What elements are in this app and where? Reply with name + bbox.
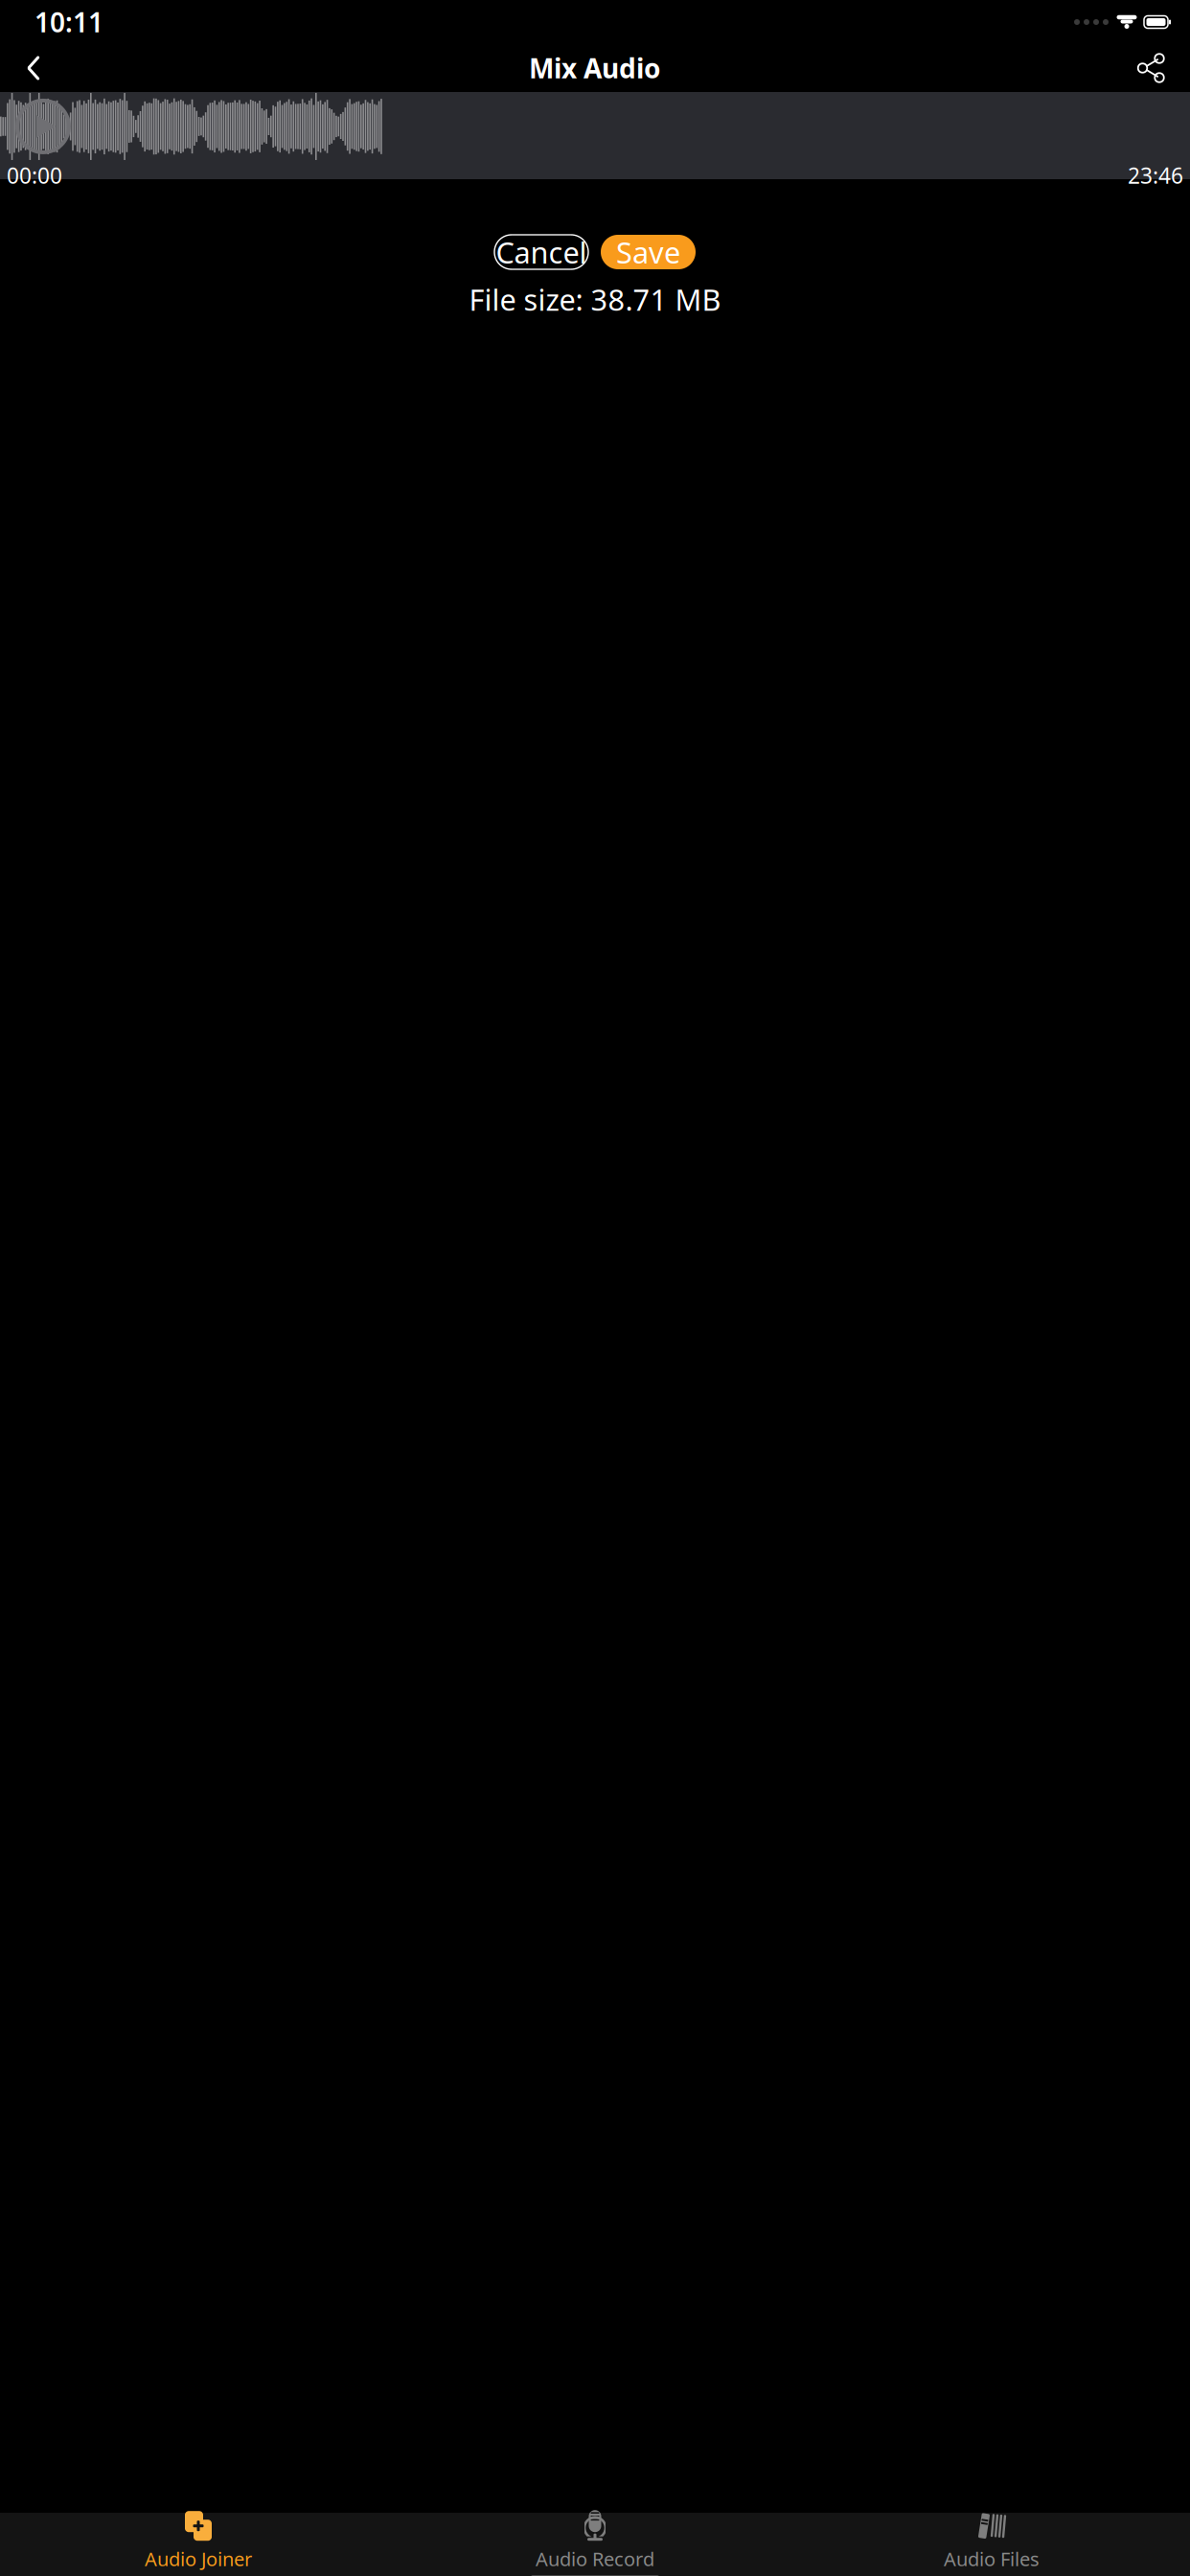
staticText: File size: 38.71 MB — [469, 280, 721, 319]
button[interactable]: Play — [0, 97, 73, 156]
staticText: Audio Files — [944, 2546, 1040, 2571]
button[interactable]: Audio Record — [397, 2505, 793, 2575]
staticText: 10:11 — [34, 4, 103, 40]
staticText: Mix Audio — [529, 50, 661, 86]
staticText: Audio Joiner — [145, 2546, 252, 2571]
button[interactable]: Audio Files — [793, 2505, 1190, 2575]
staticText: 00:00 — [7, 161, 62, 190]
button[interactable]: Share — [1125, 42, 1177, 94]
staticText: Audio Record — [536, 2546, 654, 2571]
staticText: Save — [616, 232, 680, 271]
staticText: 23:46 — [1128, 161, 1183, 190]
button[interactable]: Cancel — [494, 235, 588, 269]
staticText: Cancel — [496, 232, 587, 271]
button[interactable]: Save — [601, 235, 696, 269]
button[interactable]: Audio Joiner — [0, 2505, 397, 2575]
button[interactable]: Back — [8, 42, 59, 94]
